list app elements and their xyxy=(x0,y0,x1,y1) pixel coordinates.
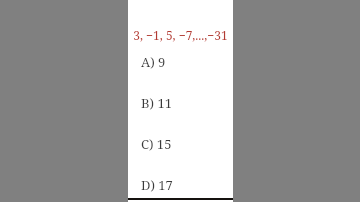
staticText: 3, −1, 5, −7,...,−31 xyxy=(133,27,228,43)
staticText: C) 15 xyxy=(141,135,172,153)
button[interactable]: 3, −1, 5, −7,...,−31 xyxy=(128,27,233,43)
button[interactable]: B) 11 xyxy=(128,92,233,114)
staticText: B) 11 xyxy=(141,94,172,112)
button[interactable]: D) 17 xyxy=(128,174,233,196)
button[interactable]: C) 15 xyxy=(128,133,233,155)
staticText: D) 17 xyxy=(141,176,173,194)
staticText: A) 9 xyxy=(141,53,166,71)
button[interactable]: A) 9 xyxy=(128,51,233,73)
